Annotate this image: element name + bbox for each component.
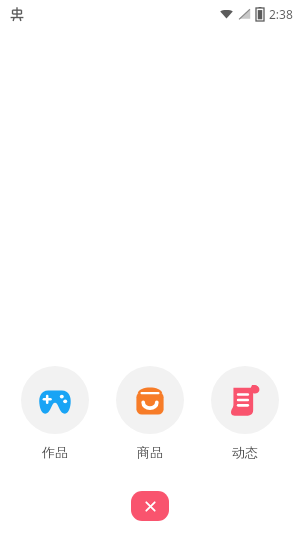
staticText: 作品 [42, 444, 68, 460]
button[interactable]: 作品 [15, 366, 95, 460]
staticText: 商品 [137, 444, 163, 460]
staticText: 动态 [232, 444, 258, 460]
other: Notification [9, 6, 25, 22]
button[interactable]: 商品 [110, 366, 190, 460]
staticText: 2:38 [269, 6, 293, 22]
button[interactable]: Close [131, 491, 169, 521]
button[interactable]: 动态 [205, 366, 285, 460]
